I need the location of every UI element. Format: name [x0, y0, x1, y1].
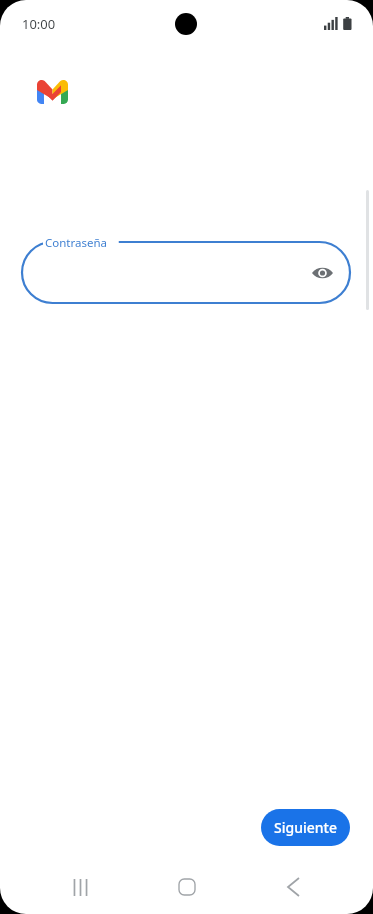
staticText: Siguiente — [274, 818, 337, 837]
button[interactable]: Recientes — [53, 860, 107, 914]
button[interactable]: Contraseña — [22, 242, 350, 303]
staticText: 10:00 — [22, 15, 56, 33]
button[interactable]: Atrás — [266, 860, 320, 914]
staticText: Contraseña — [45, 235, 108, 251]
button[interactable]: Mostrar contraseña — [305, 256, 339, 290]
button[interactable]: Siguiente — [261, 809, 350, 846]
button[interactable]: Inicio — [160, 860, 214, 914]
